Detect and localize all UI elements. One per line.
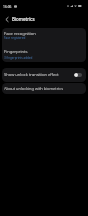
staticText: About unlocking with biometrics [4, 86, 64, 92]
button[interactable]: Face recognition [2, 28, 86, 45]
button[interactable]: Fingerprints [2, 45, 86, 62]
staticText: Face recognition [4, 30, 36, 36]
staticText: Fingerprints [4, 48, 28, 54]
button[interactable]: Navigate up [1, 14, 12, 25]
staticText: 16:06 [3, 4, 12, 8]
button[interactable]: Show unlock transition effect [2, 68, 86, 82]
staticText: 3 fingerprints added [4, 56, 33, 60]
button[interactable]: About unlocking with biometrics [2, 83, 86, 94]
staticText: Face registered [4, 36, 26, 40]
staticText: Show unlock transition effect [4, 72, 74, 78]
staticText: Biometrics [12, 16, 35, 22]
